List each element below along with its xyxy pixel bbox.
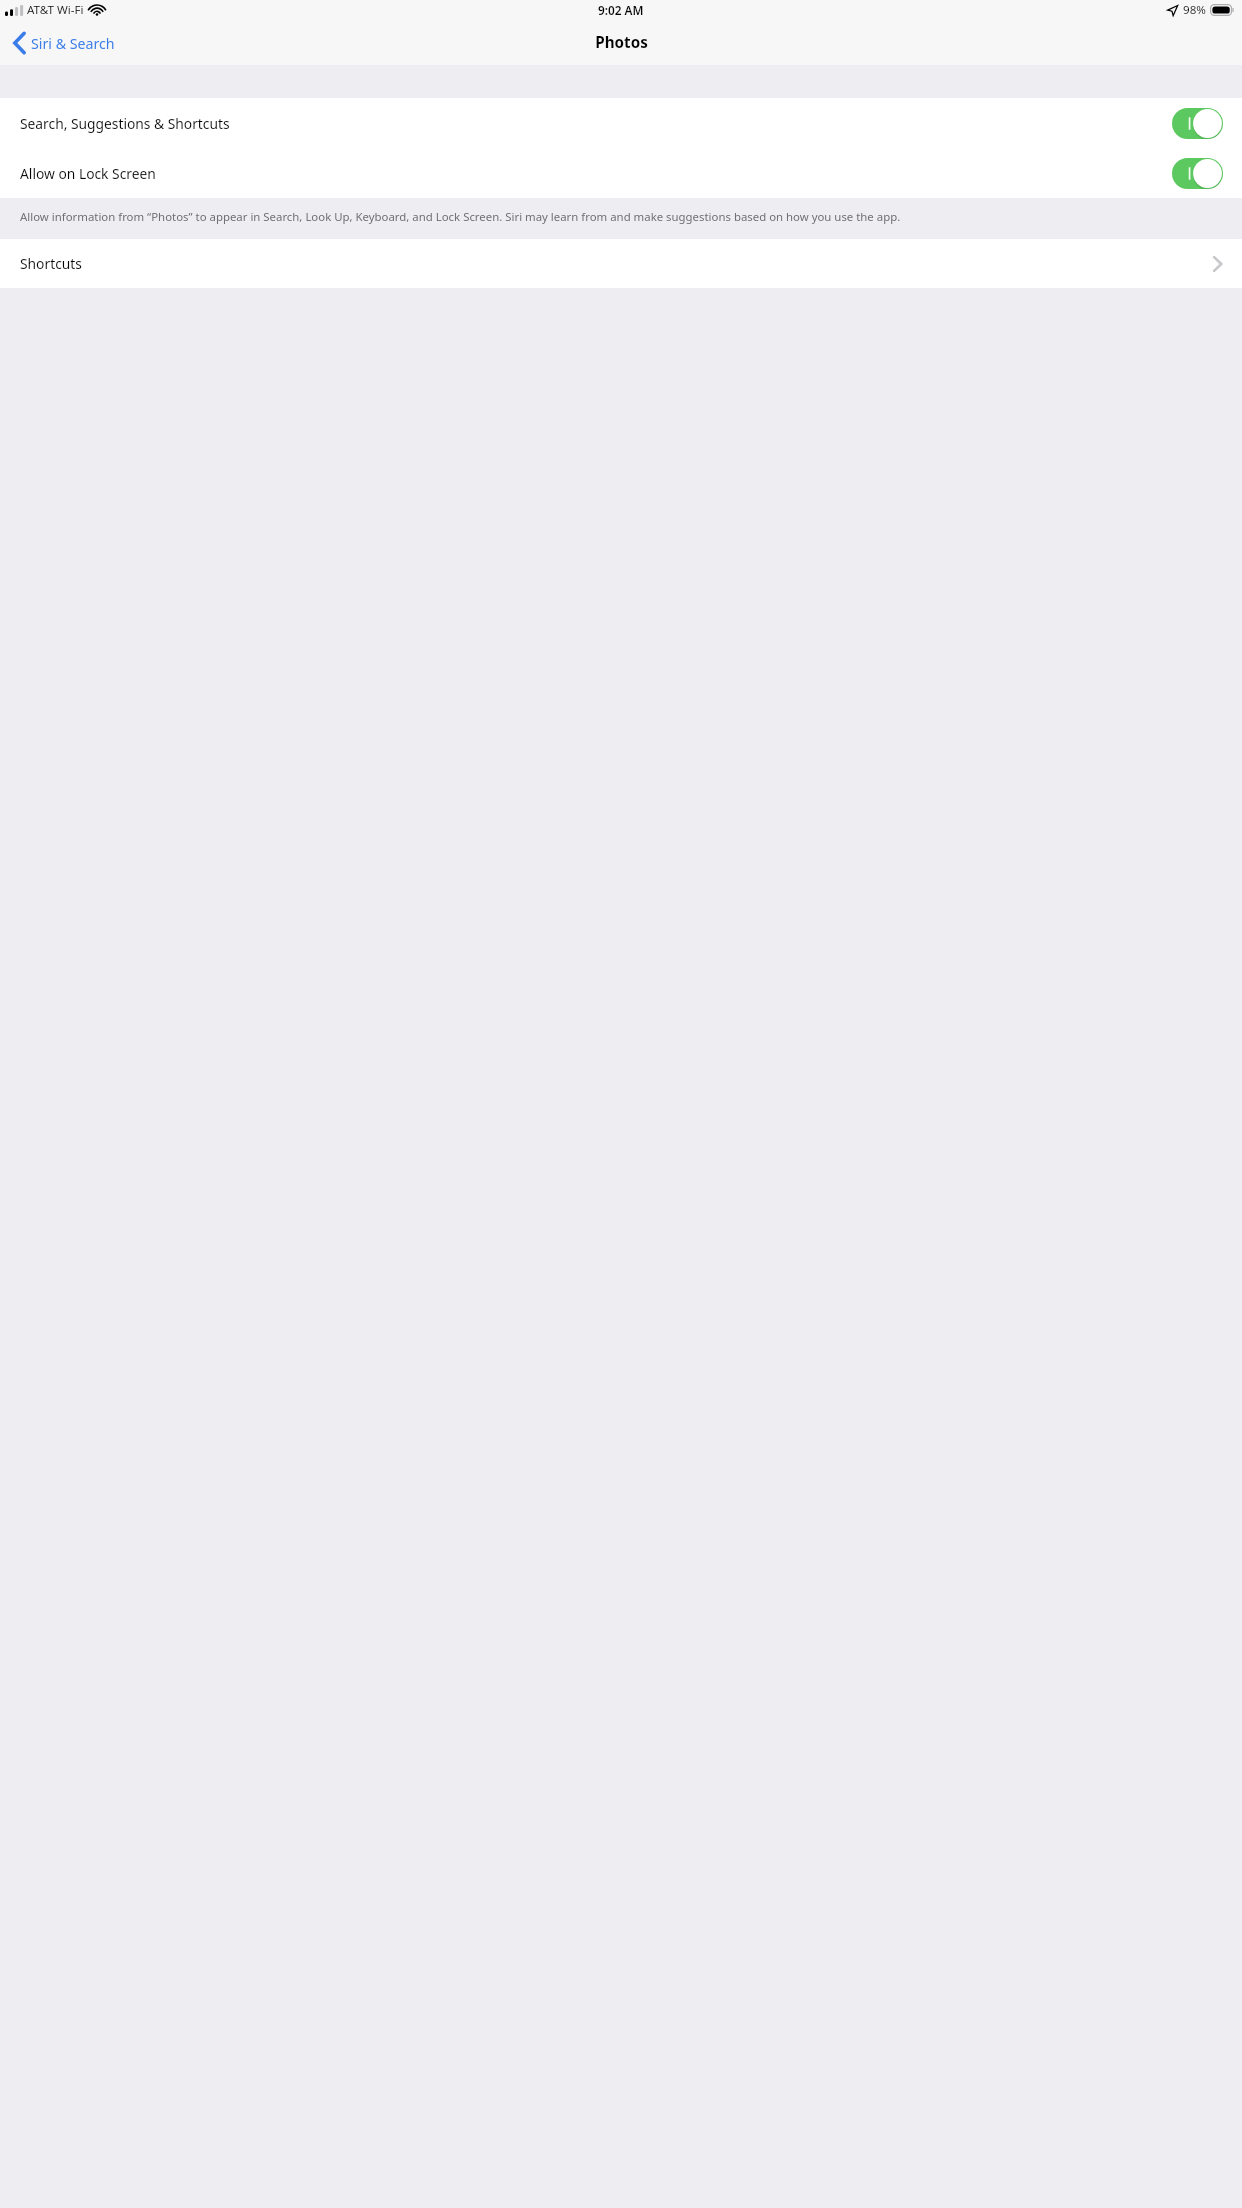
button[interactable]: Search, Suggestions & Shortcuts [0, 98, 1242, 148]
staticText: Shortcuts [20, 254, 82, 273]
staticText: Allow on Lock Screen [20, 164, 156, 183]
button[interactable]: Allow on Lock Screen [0, 148, 1242, 198]
staticText: Allow information from “Photos” to appea… [20, 209, 901, 225]
staticText: Photos [595, 32, 648, 53]
staticText: AT&T Wi-Fi [27, 2, 84, 18]
staticText: Siri & Search [31, 34, 115, 53]
button[interactable]: Toggle on [1172, 108, 1223, 139]
staticText: 9:02 AM [598, 2, 644, 18]
button[interactable]: Toggle on [1172, 158, 1223, 189]
staticText: 98% [1183, 2, 1206, 18]
staticText: Search, Suggestions & Shortcuts [20, 114, 230, 133]
button[interactable]: Shortcuts [0, 239, 1242, 288]
button[interactable]: Siri & Search [11, 28, 117, 58]
